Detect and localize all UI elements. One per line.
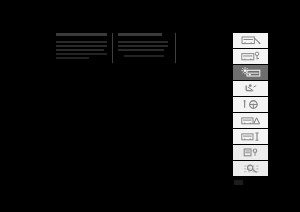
button[interactable]: Index: [233, 161, 268, 176]
button[interactable]: Instruments and controls: [233, 65, 268, 80]
button[interactable]: Seats and restraints: [233, 81, 268, 96]
button[interactable]: Technical data: [233, 145, 268, 160]
button[interactable]: Keys and doors: [233, 49, 268, 64]
button[interactable]: Service and maintenance: [233, 129, 268, 144]
button[interactable]: Driving and operation: [233, 97, 268, 112]
button[interactable]: Quick reference: [233, 33, 268, 48]
button[interactable]: Vehicle care: [233, 113, 268, 128]
